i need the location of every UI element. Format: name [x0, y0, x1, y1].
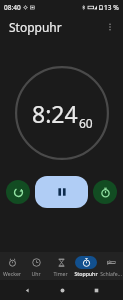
- staticText: 08:40: [4, 3, 21, 12]
- staticText: Stoppuhr: [74, 270, 98, 277]
- staticText: Wecker: [3, 270, 21, 277]
- button[interactable]: Zurücksetzen: [6, 180, 30, 204]
- staticText: Stoppuhr: [9, 19, 62, 35]
- staticText: 13 %: [104, 3, 119, 12]
- staticText: Schlafe...: [100, 270, 122, 277]
- button[interactable]: Übersicht: [88, 282, 104, 298]
- button[interactable]: Runde: [93, 180, 117, 204]
- button[interactable]: Stoppuhr: [73, 255, 98, 277]
- staticText: 60: [79, 115, 93, 131]
- button[interactable]: Wecker: [0, 255, 24, 277]
- button[interactable]: Weitere Optionen: [101, 18, 119, 36]
- button[interactable]: Pause: [35, 176, 88, 208]
- button[interactable]: Zurück: [19, 282, 35, 298]
- staticText: Timer: [53, 270, 68, 277]
- staticText: Uhr: [31, 270, 41, 277]
- button[interactable]: Timer: [48, 255, 73, 277]
- button[interactable]: Startbildschirm: [54, 282, 70, 298]
- button[interactable]: Schlafe...: [98, 255, 123, 277]
- staticText: 8:24: [32, 98, 78, 129]
- button[interactable]: Uhr: [24, 255, 48, 277]
